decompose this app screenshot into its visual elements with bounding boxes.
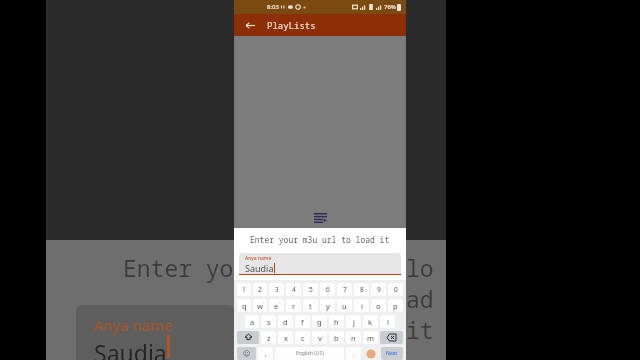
button[interactable]: c xyxy=(295,331,310,344)
staticText: English (US) xyxy=(296,350,324,357)
button[interactable]: Back xyxy=(242,17,258,33)
staticText: 8 xyxy=(360,285,364,294)
button[interactable]: 6 xyxy=(320,283,335,296)
staticText: 6 xyxy=(326,285,330,294)
staticText: t xyxy=(309,301,312,311)
button[interactable]: , xyxy=(258,347,273,360)
staticText: load it xyxy=(406,252,446,345)
staticText: p xyxy=(393,301,398,311)
staticText: Next xyxy=(386,350,398,357)
button[interactable]: Shift xyxy=(237,331,259,344)
staticText: a xyxy=(250,317,255,327)
button[interactable]: Backspace xyxy=(380,331,403,344)
button[interactable] xyxy=(363,347,379,360)
button[interactable]: h xyxy=(329,315,344,328)
staticText: Enter yo xyxy=(123,252,234,283)
button[interactable]: Emoji keyboard xyxy=(237,347,256,360)
button[interactable]: g xyxy=(312,315,327,328)
staticText: v xyxy=(318,333,322,343)
staticText: 1 xyxy=(242,285,246,294)
button[interactable]: i xyxy=(354,299,369,312)
staticText: ' xyxy=(279,301,280,306)
staticText: , xyxy=(265,349,267,359)
staticText: Anya name xyxy=(94,315,173,335)
staticText: Anya name xyxy=(245,255,272,262)
button[interactable]: 1 xyxy=(237,283,251,296)
button[interactable]: 7 xyxy=(337,283,352,296)
button[interactable]: 3 xyxy=(269,283,284,296)
button[interactable]: e xyxy=(269,299,284,312)
staticText: ☺ xyxy=(243,350,251,358)
staticText: s xyxy=(267,317,271,327)
button[interactable]: d xyxy=(278,315,293,328)
button[interactable]: u xyxy=(337,299,352,312)
button[interactable]: n xyxy=(346,331,361,344)
staticText: j xyxy=(353,317,355,327)
staticText: c xyxy=(301,333,305,343)
button[interactable]: b xyxy=(329,331,344,344)
button[interactable]: . xyxy=(346,347,361,360)
staticText: f xyxy=(301,317,304,327)
button[interactable]: Anya name xyxy=(239,253,401,275)
staticText: 76% xyxy=(384,3,396,11)
staticText: o xyxy=(376,301,381,311)
staticText: 5 xyxy=(309,285,313,294)
button[interactable]: x xyxy=(278,331,293,344)
staticText: ' xyxy=(263,301,264,306)
button[interactable]: Space xyxy=(275,347,344,360)
staticText: u xyxy=(342,301,347,311)
button[interactable]: k xyxy=(363,315,378,328)
button[interactable]: q xyxy=(237,299,251,312)
staticText: 2 xyxy=(258,285,262,294)
staticText: z xyxy=(267,333,271,343)
staticText: h xyxy=(334,317,339,327)
button[interactable]: o xyxy=(371,299,386,312)
button[interactable]: m xyxy=(363,331,378,344)
staticText: PlayLists xyxy=(267,19,316,31)
button[interactable]: r xyxy=(286,299,301,312)
staticText: n xyxy=(351,333,356,343)
staticText: 9 xyxy=(377,285,381,294)
staticText: r xyxy=(292,301,296,311)
button[interactable]: 9 xyxy=(371,283,386,296)
button[interactable]: j xyxy=(346,315,361,328)
staticText: q xyxy=(242,301,247,311)
staticText: i xyxy=(361,301,363,311)
staticText: g xyxy=(317,317,322,327)
button[interactable]: s xyxy=(261,315,276,328)
button[interactable]: v xyxy=(312,331,327,344)
staticText: m xyxy=(367,333,375,343)
button[interactable]: y xyxy=(320,299,335,312)
staticText: 4 xyxy=(292,285,296,294)
button[interactable]: 0 xyxy=(388,283,403,296)
staticText: 3 xyxy=(275,285,279,294)
button[interactable]: z xyxy=(261,331,276,344)
staticText: . xyxy=(353,349,355,359)
staticText: l xyxy=(387,317,389,327)
staticText: d xyxy=(283,317,288,327)
button[interactable]: Next xyxy=(381,347,403,360)
staticText: k xyxy=(368,317,373,327)
staticText: y xyxy=(326,301,330,311)
staticText: e xyxy=(274,301,279,311)
button[interactable]: t xyxy=(303,299,318,312)
staticText: Saudia xyxy=(245,262,274,274)
button[interactable]: p xyxy=(388,299,403,312)
staticText: 0 xyxy=(394,285,398,294)
staticText: w xyxy=(257,301,263,311)
button[interactable]: 5 xyxy=(303,283,318,296)
staticText: x xyxy=(284,333,288,343)
staticText: 8:03 xyxy=(267,3,279,11)
button[interactable]: a xyxy=(245,315,259,328)
staticText: Enter your m3u url to load it xyxy=(250,234,390,245)
staticText: Saudia xyxy=(94,337,167,360)
button[interactable]: 2 xyxy=(253,283,267,296)
button[interactable]: l xyxy=(380,315,395,328)
button[interactable]: f xyxy=(295,315,310,328)
staticText: b xyxy=(334,333,339,343)
button[interactable]: w xyxy=(253,299,267,312)
button[interactable]: 4 xyxy=(286,283,301,296)
staticText: 7 xyxy=(343,285,347,294)
button[interactable]: 8 xyxy=(354,283,369,296)
